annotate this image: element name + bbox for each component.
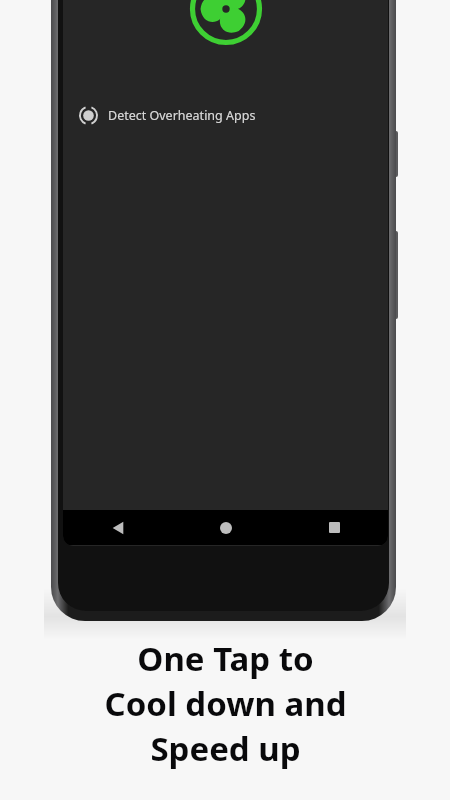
button[interactable]: Home <box>172 510 280 545</box>
button[interactable]: Back <box>63 510 172 545</box>
staticText: Detect Overheating Apps <box>108 107 256 124</box>
button[interactable]: Detect Overheating Apps <box>63 102 388 129</box>
staticText: One Tap to Cool down and Speed up <box>104 636 347 771</box>
button[interactable]: Recent apps <box>280 510 388 545</box>
